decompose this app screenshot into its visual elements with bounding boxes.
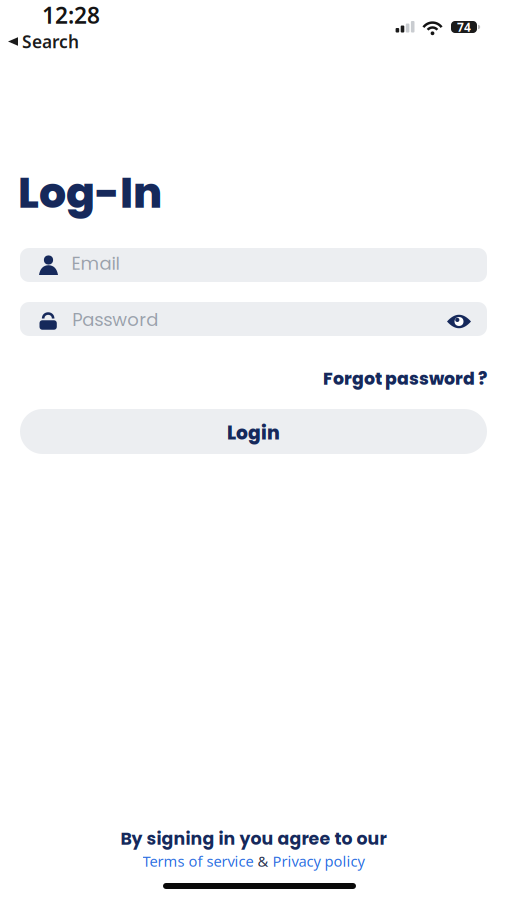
staticText: Search xyxy=(22,30,79,53)
staticText: Login xyxy=(227,420,280,446)
button[interactable]: Privacy policy xyxy=(272,851,364,871)
staticText: 12:28 xyxy=(42,0,100,30)
staticText: & xyxy=(253,851,272,871)
staticText: 74 xyxy=(457,19,471,35)
button[interactable]: Back to Search xyxy=(8,30,79,53)
staticText: By signing in you agree to our xyxy=(120,826,386,851)
staticText: Privacy policy xyxy=(272,851,364,871)
staticText: Email xyxy=(71,251,119,276)
button[interactable]: Terms of service xyxy=(142,851,253,871)
button[interactable]: Login xyxy=(20,409,487,454)
staticText: Terms of service xyxy=(142,851,253,871)
button[interactable]: Password xyxy=(20,302,487,336)
staticText: Log-In xyxy=(18,163,162,223)
button[interactable]: Forgot password ? xyxy=(323,366,487,391)
staticText: Password xyxy=(72,307,158,332)
button[interactable]: Email xyxy=(20,248,487,282)
staticText: Forgot password ? xyxy=(323,366,487,391)
button[interactable]: Show password xyxy=(447,309,487,328)
